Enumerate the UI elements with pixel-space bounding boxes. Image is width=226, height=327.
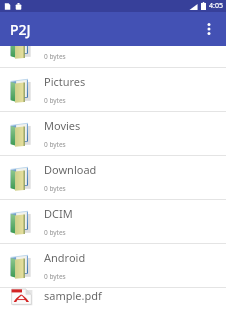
staticText: Download [44,162,97,177]
button[interactable]: DCIM [0,200,226,243]
staticText: 0 bytes [44,52,66,61]
staticText: sample.pdf [44,288,102,303]
button[interactable]: More options [194,14,224,44]
button[interactable]: Android [0,244,226,287]
staticText: Android [44,250,86,265]
staticText: 0 bytes [44,96,66,105]
staticText: P2J [10,20,31,39]
staticText: 0 bytes [44,184,66,193]
staticText: Pictures [44,74,86,89]
button[interactable]: Pictures [0,68,226,111]
staticText: 0 bytes [44,228,66,237]
button[interactable]: sample.pdf [0,288,226,305]
staticText: 0 bytes [44,140,66,149]
button[interactable]: Download [0,156,226,199]
button[interactable]: Music [0,46,226,67]
staticText: Movies [44,118,81,133]
staticText: DCIM [44,206,73,221]
staticText: 0 bytes [44,272,66,281]
staticText: 4:05 [209,1,223,11]
button[interactable]: Movies [0,112,226,155]
